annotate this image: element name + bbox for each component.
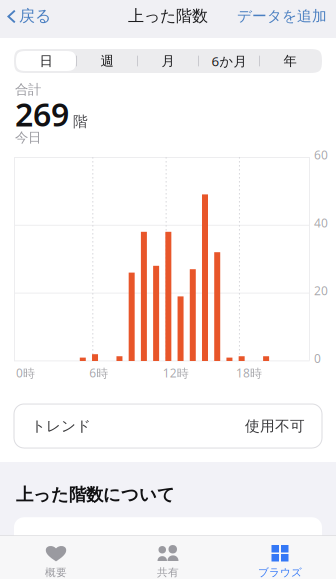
button[interactable]: 6か月 [199,51,259,71]
staticText: 戻る [19,6,51,26]
button[interactable]: 月 [138,51,198,71]
staticText: 40 [314,215,328,231]
staticText: 上った階数について [16,484,175,505]
staticText: 18時 [236,365,262,381]
staticText: 269 [15,93,69,135]
button[interactable]: データを追加 [237,3,336,29]
staticText: ブラウズ [258,566,302,579]
button[interactable]: 戻る [0,2,51,30]
staticText: 日 [39,53,52,69]
button[interactable]: 週 [77,51,137,71]
staticText: 今日 [15,129,41,146]
button[interactable]: トレンド [0,404,336,448]
staticText: 上った階数 [128,6,208,26]
staticText: トレンド [31,417,91,435]
staticText: 20 [314,283,328,298]
staticText: 年 [283,53,296,69]
staticText: 共有 [157,566,179,579]
button[interactable]: 日 [16,51,76,71]
button[interactable]: ブラウズ [224,536,336,579]
staticText: データを追加 [237,7,327,25]
staticText: 12時 [163,365,189,381]
staticText: 週 [100,53,113,69]
staticText: 合計 [15,81,41,98]
button[interactable]: 共有 [112,536,224,579]
button[interactable]: 年 [260,51,320,71]
staticText: 6か月 [211,52,246,70]
staticText: 0時 [16,365,35,381]
staticText: 0 [314,350,321,366]
staticText: 階 [73,112,88,130]
staticText: 使用不可 [245,417,305,435]
staticText: 概要 [45,566,67,579]
staticText: 月 [161,53,174,69]
staticText: 6時 [89,365,108,381]
staticText: 60 [314,147,328,163]
button[interactable]: 概要 [0,536,112,579]
